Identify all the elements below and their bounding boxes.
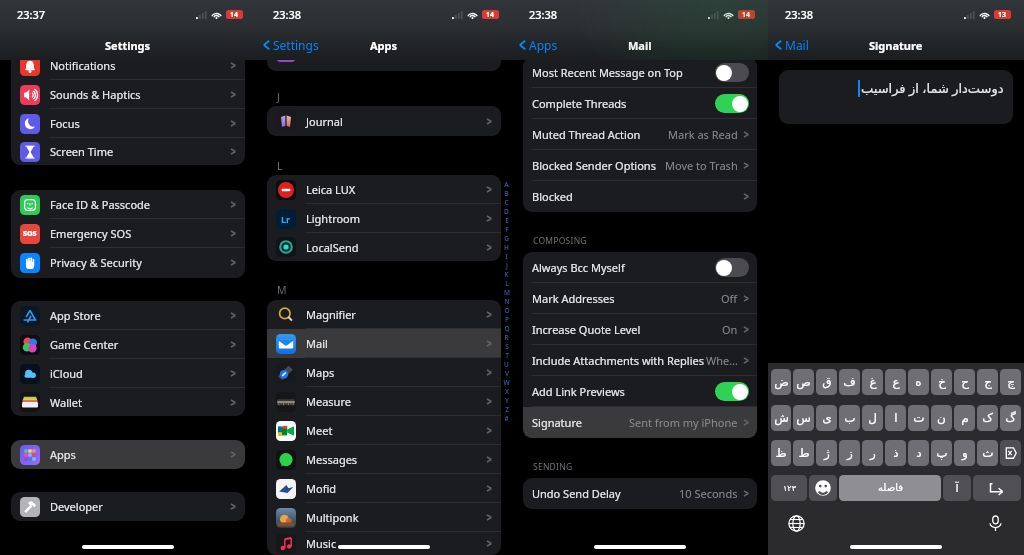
button[interactable]: Wallet bbox=[11, 388, 245, 416]
staticText: Z bbox=[505, 405, 509, 414]
staticText: Signature bbox=[532, 415, 582, 430]
staticText: خ bbox=[938, 375, 946, 389]
button[interactable]: Lr bbox=[267, 204, 501, 233]
button[interactable]: ک bbox=[977, 405, 998, 431]
button[interactable]: Developer bbox=[11, 492, 245, 521]
button[interactable]: Mofid bbox=[267, 474, 501, 503]
button[interactable]: ش bbox=[771, 405, 791, 431]
button[interactable]: Apps bbox=[11, 440, 245, 469]
button[interactable]: Undo Send Delay bbox=[523, 478, 757, 509]
staticText: B bbox=[504, 189, 509, 198]
staticText: App Store bbox=[50, 308, 101, 323]
button[interactable]: س bbox=[793, 405, 814, 431]
button[interactable]: Return bbox=[973, 475, 1021, 501]
button[interactable]: Settings bbox=[263, 37, 319, 53]
button[interactable]: م bbox=[954, 405, 975, 431]
button[interactable]: ص bbox=[793, 369, 814, 395]
button[interactable]: Measure bbox=[267, 387, 501, 416]
button[interactable]: Add Link Previews bbox=[523, 376, 757, 407]
button[interactable]: آ bbox=[943, 475, 971, 501]
staticText: ک bbox=[982, 411, 993, 425]
button[interactable]: ا bbox=[885, 405, 906, 431]
button[interactable]: د bbox=[908, 440, 929, 466]
button[interactable]: Include Attachments with Replies bbox=[523, 345, 757, 376]
button[interactable]: ظ bbox=[771, 440, 791, 466]
staticText: T bbox=[505, 351, 509, 360]
button[interactable]: Instagram bbox=[267, 37, 501, 66]
button[interactable]: Mail bbox=[775, 37, 809, 53]
button[interactable]: Journal bbox=[267, 106, 501, 136]
staticText: م bbox=[961, 411, 969, 425]
button[interactable]: و bbox=[954, 440, 975, 466]
button[interactable]: Muted Thread Action bbox=[523, 119, 757, 150]
button[interactable]: Blocked bbox=[523, 181, 757, 212]
staticText: SOS bbox=[23, 229, 37, 239]
button[interactable]: گ bbox=[1000, 405, 1021, 431]
button[interactable]: Backspace bbox=[1000, 440, 1021, 466]
button[interactable]: Meet bbox=[267, 416, 501, 445]
button[interactable]: فاصله bbox=[839, 475, 941, 501]
button[interactable]: پ bbox=[931, 440, 952, 466]
button[interactable]: ف bbox=[839, 369, 860, 395]
button[interactable]: Change keyboard bbox=[788, 515, 805, 532]
button[interactable]: Complete Threads bbox=[523, 88, 757, 119]
button[interactable]: ط bbox=[793, 440, 814, 466]
button[interactable]: ه bbox=[908, 369, 929, 395]
button[interactable]: Mail bbox=[267, 329, 501, 358]
staticText: Magnifier bbox=[306, 307, 356, 322]
button[interactable]: ق bbox=[816, 369, 837, 395]
button[interactable]: ژ bbox=[816, 440, 837, 466]
button[interactable]: iCloud bbox=[11, 359, 245, 388]
staticText: پ bbox=[936, 446, 948, 460]
button[interactable]: Privacy & Security bbox=[11, 248, 245, 277]
button[interactable]: ج bbox=[977, 369, 998, 395]
button[interactable]: App Store bbox=[11, 301, 245, 330]
button[interactable]: Game Center bbox=[11, 330, 245, 359]
button[interactable]: ث bbox=[977, 440, 998, 466]
button[interactable]: Most Recent Message on Top bbox=[523, 57, 757, 88]
staticText: L bbox=[505, 279, 509, 288]
button[interactable]: Sounds & Haptics bbox=[11, 80, 245, 109]
button[interactable]: Blocked Sender Options bbox=[523, 150, 757, 181]
button[interactable]: ب bbox=[839, 405, 860, 431]
button[interactable]: Magnifier bbox=[267, 300, 501, 329]
button[interactable]: Dictate bbox=[987, 515, 1004, 532]
button[interactable]: Mark Addresses bbox=[523, 283, 757, 314]
button[interactable]: ن bbox=[931, 405, 952, 431]
button[interactable]: Signature bbox=[523, 407, 757, 438]
button[interactable]: Messages bbox=[267, 445, 501, 474]
staticText: ع bbox=[892, 375, 900, 389]
button[interactable]: Notifications bbox=[11, 51, 245, 80]
staticText: Sounds & Haptics bbox=[50, 87, 141, 102]
button[interactable]: ح bbox=[954, 369, 975, 395]
button[interactable]: چ bbox=[1000, 369, 1021, 395]
button[interactable]: ض bbox=[771, 369, 791, 395]
staticText: 23:37 bbox=[17, 7, 46, 22]
button[interactable]: Screen Time bbox=[11, 138, 245, 165]
button[interactable]: Emoji bbox=[809, 475, 837, 501]
button[interactable]: ل bbox=[862, 405, 883, 431]
button[interactable]: ز bbox=[839, 440, 860, 466]
button[interactable]: ۱۲۳ bbox=[771, 475, 807, 501]
button[interactable]: Increase Quote Level bbox=[523, 314, 757, 345]
button[interactable]: ع bbox=[885, 369, 906, 395]
staticText: Settings bbox=[105, 38, 151, 53]
button[interactable]: Maps bbox=[267, 358, 501, 387]
button[interactable]: Music bbox=[267, 532, 501, 555]
button[interactable]: ر bbox=[862, 440, 883, 466]
button[interactable]: SOS bbox=[11, 219, 245, 248]
button[interactable]: ت bbox=[908, 405, 929, 431]
button[interactable]: Focus bbox=[11, 109, 245, 138]
staticText: ر bbox=[870, 446, 876, 460]
button[interactable]: غ bbox=[862, 369, 883, 395]
staticText: 14 bbox=[230, 10, 239, 19]
button[interactable]: خ bbox=[931, 369, 952, 395]
button[interactable]: Leica LUX bbox=[267, 175, 501, 204]
button[interactable]: LocalSend bbox=[267, 233, 501, 261]
button[interactable]: Face ID & Passcode bbox=[11, 190, 245, 219]
button[interactable]: Apps bbox=[519, 37, 558, 53]
button[interactable]: Always Bcc Myself bbox=[523, 252, 757, 283]
button[interactable]: ذ bbox=[885, 440, 906, 466]
button[interactable]: Multiponk bbox=[267, 503, 501, 532]
button[interactable]: ی bbox=[816, 405, 837, 431]
